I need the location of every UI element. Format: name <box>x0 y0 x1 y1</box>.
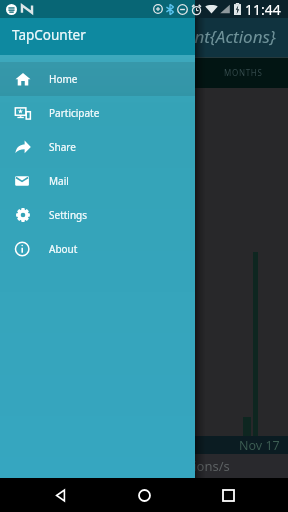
staticText: Count{Actions} <box>165 25 276 48</box>
button[interactable]: Home <box>120 478 168 512</box>
staticText: Nov 17 <box>239 437 280 454</box>
button[interactable]: Home <box>0 62 195 96</box>
button[interactable]: About <box>0 232 195 266</box>
staticText: 11:44 <box>245 0 281 18</box>
button[interactable]: Settings <box>0 198 195 232</box>
button[interactable]: Participate <box>0 96 195 130</box>
button[interactable]: Back <box>36 478 84 512</box>
staticText: Participate <box>49 106 100 120</box>
staticText: About <box>49 242 78 256</box>
staticText: Share <box>49 140 76 154</box>
button[interactable]: Share <box>0 130 195 164</box>
button[interactable]: Recent apps <box>204 478 252 512</box>
staticText: Actions/s <box>174 457 230 475</box>
staticText: Home <box>49 72 78 86</box>
staticText: MONTHS <box>224 67 263 78</box>
staticText: TapCounter <box>12 26 86 44</box>
staticText: Settings <box>49 208 88 222</box>
staticText: Mail <box>49 174 69 188</box>
button[interactable]: Mail <box>0 164 195 198</box>
